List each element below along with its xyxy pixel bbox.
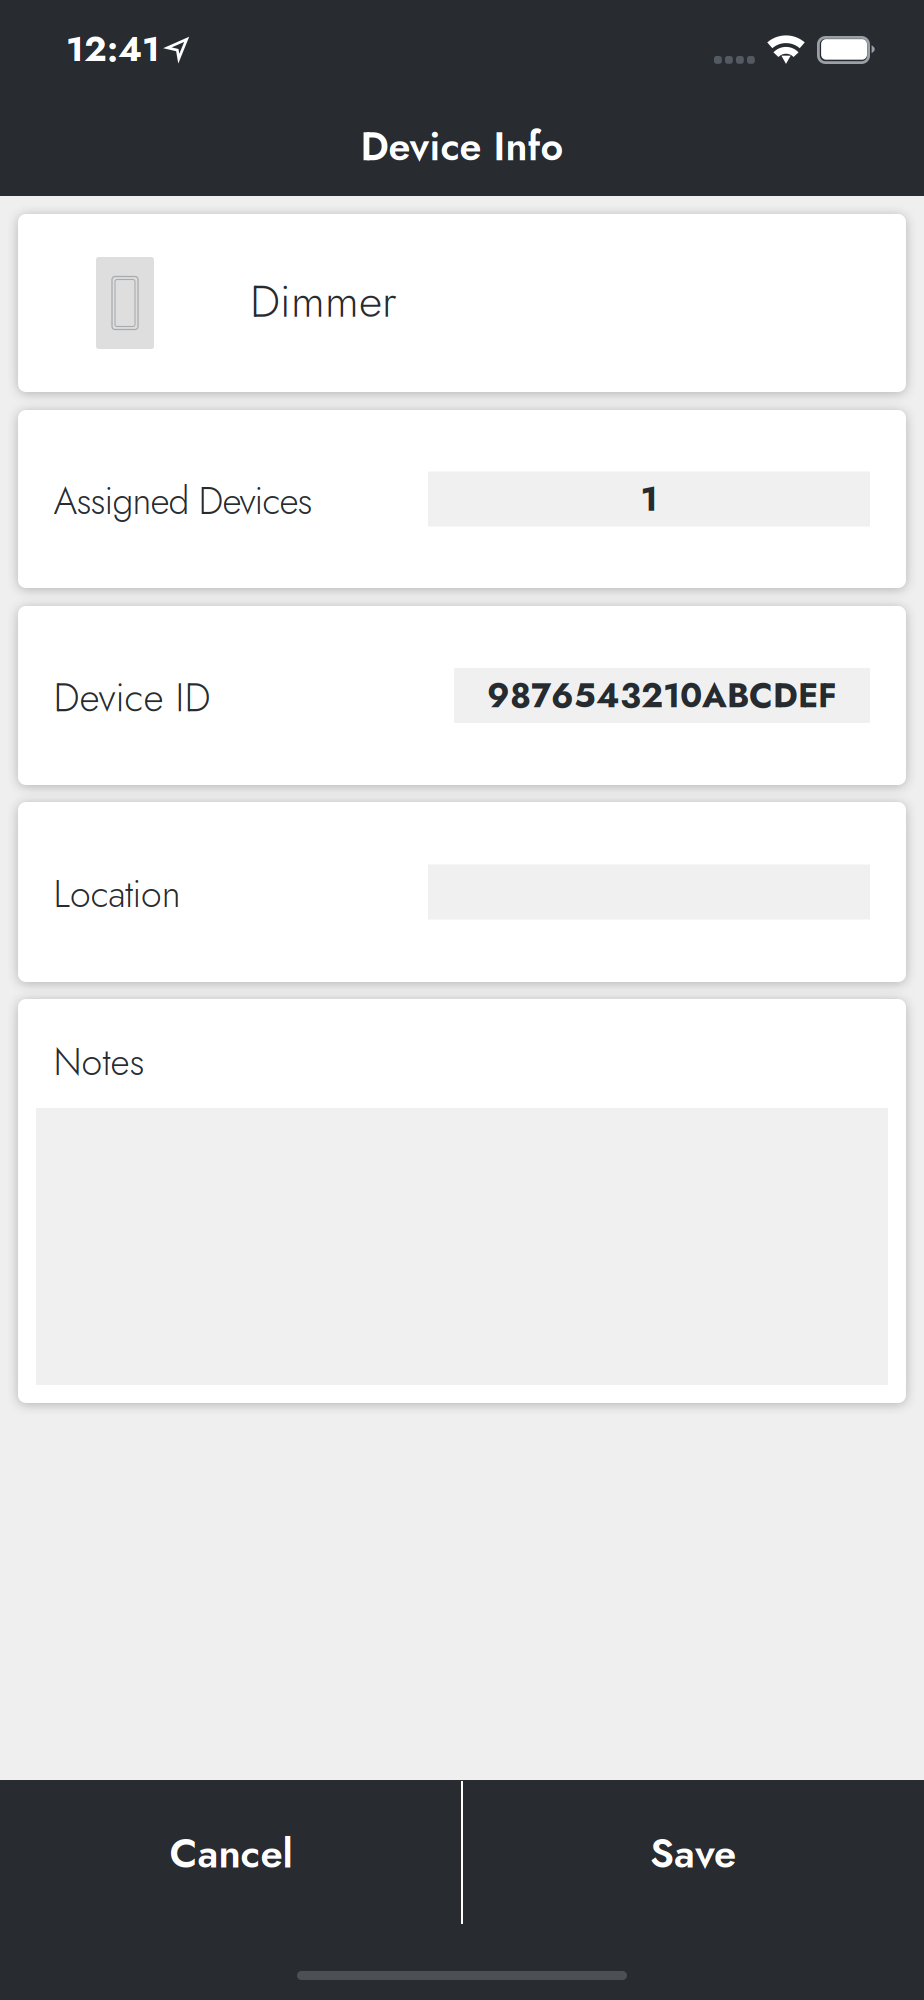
staticText: Dimmer — [250, 268, 397, 334]
button[interactable]: Device ID — [454, 668, 870, 723]
button[interactable]: Assigned Devices — [428, 471, 870, 526]
staticText: Cancel — [169, 1825, 292, 1882]
staticText: 9876543210ABCDEF — [487, 671, 837, 720]
staticText: Save — [650, 1825, 736, 1882]
staticText: 12:41 — [66, 24, 160, 74]
staticText: 1 — [640, 475, 657, 523]
button[interactable]: Cancel — [0, 1780, 462, 1923]
button[interactable]: Save — [462, 1780, 924, 1923]
staticText: Assigned Devices — [53, 474, 312, 528]
staticText: Notes — [53, 1035, 144, 1089]
staticText: Device Info — [360, 118, 563, 175]
staticText: Device ID — [53, 669, 210, 726]
staticText: Location — [53, 867, 181, 921]
